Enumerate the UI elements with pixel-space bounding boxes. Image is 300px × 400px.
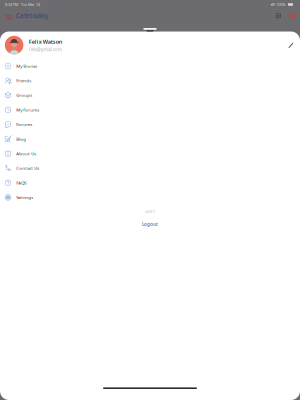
staticText: Settings [16, 194, 33, 200]
staticText: Friends [16, 78, 31, 83]
button[interactable]: Account [286, 10, 298, 22]
button[interactable]: Blog [0, 132, 300, 146]
button[interactable]: My Forums [0, 102, 300, 117]
button[interactable]: Friends [0, 73, 300, 88]
button[interactable]: About Us [0, 146, 300, 161]
staticText: My Forums [16, 107, 39, 113]
button[interactable]: Play [273, 10, 284, 21]
staticText: felix@gmail.com [29, 46, 62, 52]
staticText: Groups [16, 92, 32, 98]
button[interactable]: Logout [134, 219, 166, 229]
staticText: 100% [277, 2, 286, 7]
staticText: Felix Watson [29, 38, 63, 45]
staticText: v3.0.1 [145, 209, 155, 214]
staticText: Forums [16, 121, 32, 127]
staticText: About Us [16, 151, 36, 156]
staticText: My Stories [16, 63, 37, 69]
staticText: Cafetoday [16, 11, 49, 20]
button[interactable]: FAQS [0, 175, 300, 190]
button[interactable]: Edit profile [284, 38, 297, 52]
button[interactable]: Forums [0, 117, 300, 132]
button[interactable]: Contact Us [0, 161, 300, 175]
button[interactable]: Groups [0, 88, 300, 102]
button[interactable]: Settings [0, 190, 300, 205]
staticText: Logout [142, 221, 158, 227]
button[interactable]: My Stories [0, 59, 300, 73]
staticText: FAQS [16, 180, 26, 186]
staticText: 8:34 PM Tue Mar 14 [5, 2, 40, 7]
staticText: Contact Us [16, 165, 39, 171]
staticText: Blog [16, 136, 26, 142]
